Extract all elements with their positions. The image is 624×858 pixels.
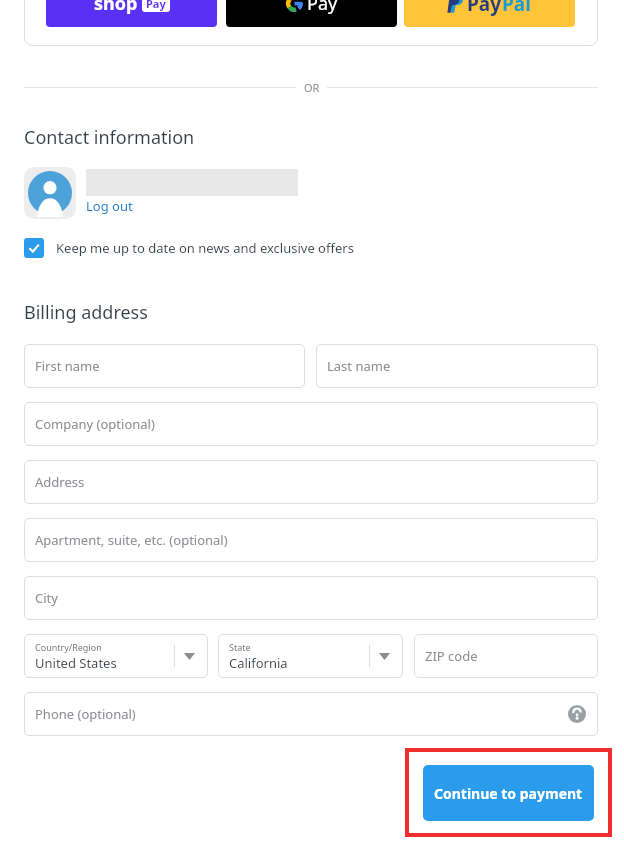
- button[interactable]: Keep me up to date on news and exclusive…: [24, 238, 354, 258]
- button[interactable]: Continue to payment: [423, 765, 594, 821]
- other: Phone help: [568, 705, 586, 723]
- staticText: ZIP code: [425, 647, 478, 665]
- button[interactable]: Apartment, suite, etc. (optional): [24, 518, 598, 562]
- button[interactable]: Last name: [316, 344, 598, 388]
- button[interactable]: ZIP code: [414, 634, 598, 678]
- staticText: Pay: [146, 0, 166, 11]
- staticText: Apartment, suite, etc. (optional): [35, 531, 228, 549]
- staticText: Contact information: [24, 125, 195, 150]
- staticText: Log out: [86, 197, 133, 215]
- staticText: Keep me up to date on news and exclusive…: [56, 239, 354, 257]
- staticText: Billing address: [24, 300, 148, 325]
- staticText: Address: [35, 473, 85, 491]
- staticText: shop: [94, 0, 138, 16]
- staticText: Pay: [307, 0, 338, 16]
- button[interactable]: First name: [24, 344, 305, 388]
- staticText: OR: [304, 80, 320, 95]
- staticText: Phone (optional): [35, 705, 136, 723]
- staticText: City: [35, 589, 58, 607]
- staticText: Pay: [467, 0, 502, 17]
- staticText: State: [229, 641, 251, 653]
- staticText: Pal: [502, 0, 531, 17]
- button[interactable]: Country/Region: [24, 634, 208, 678]
- staticText: United States: [35, 654, 117, 672]
- button[interactable]: City: [24, 576, 598, 620]
- button[interactable]: PayPal: [404, 0, 575, 27]
- staticText: Company (optional): [35, 415, 155, 433]
- staticText: Continue to payment: [434, 784, 583, 803]
- button[interactable]: Company (optional): [24, 402, 598, 446]
- button[interactable]: Shop Pay: [46, 0, 217, 27]
- button[interactable]: Log out: [86, 196, 133, 216]
- staticText: California: [229, 654, 288, 672]
- staticText: First name: [35, 357, 100, 375]
- staticText: Country/Region: [35, 641, 102, 653]
- staticText: Last name: [327, 357, 391, 375]
- button[interactable]: Phone (optional): [24, 692, 598, 736]
- button[interactable]: Google Pay: [226, 0, 397, 27]
- button[interactable]: Address: [24, 460, 598, 504]
- button[interactable]: State: [218, 634, 403, 678]
